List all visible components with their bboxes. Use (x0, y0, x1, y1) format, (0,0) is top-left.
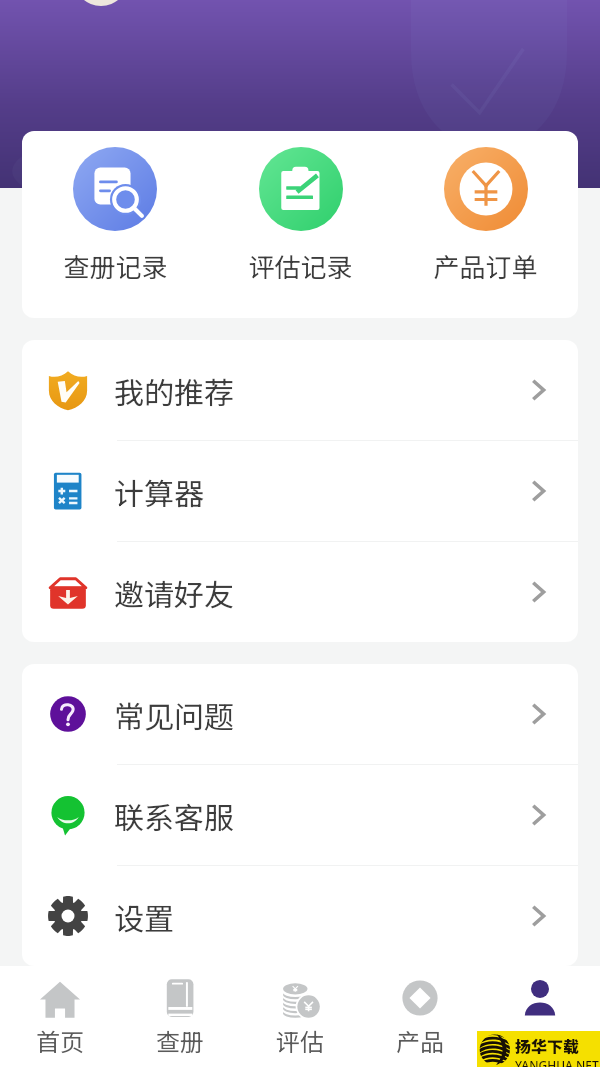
button[interactable]: 我的 (480, 966, 600, 1067)
staticText: 首页 (36, 1023, 84, 1058)
button[interactable]: 邀请好友 (22, 542, 578, 642)
staticText: 邀请好友 (114, 571, 234, 614)
button[interactable]: 评估 (240, 966, 360, 1067)
staticText: 评估 (276, 1023, 324, 1058)
button[interactable]: 产品 (360, 966, 480, 1067)
staticText: 我的推荐 (114, 369, 234, 412)
button[interactable]: 计算器 (22, 441, 578, 541)
button[interactable]: 查册记录 (22, 147, 208, 318)
other: 邀请好友 (524, 578, 552, 606)
button[interactable]: 设置 (22, 866, 578, 966)
staticText: 查册记录 (63, 247, 168, 285)
button[interactable]: 查册 (120, 966, 240, 1067)
staticText: 设置 (114, 895, 174, 938)
staticText: 常见问题 (114, 693, 234, 736)
other: 常见问题 (524, 700, 552, 728)
staticText: 产品 (396, 1023, 444, 1058)
other: 联系客服 (524, 801, 552, 829)
staticText: 评估记录 (248, 247, 353, 285)
button[interactable]: 评估记录 (208, 147, 393, 318)
other: 设置 (524, 902, 552, 930)
button[interactable]: 联系客服 (22, 765, 578, 865)
button[interactable]: 首页 (0, 966, 120, 1067)
staticText: 计算器 (114, 470, 204, 513)
other: 我的推荐 (524, 376, 552, 404)
staticText: 查册 (156, 1023, 204, 1058)
button[interactable]: 产品订单 (393, 147, 578, 318)
staticText: YANGHUA.NET (515, 1057, 599, 1067)
staticText: 产品订单 (433, 247, 538, 285)
other: 计算器 (524, 477, 552, 505)
button[interactable]: 常见问题 (22, 664, 578, 764)
staticText: 我的 (516, 1023, 564, 1058)
staticText: 联系客服 (114, 794, 234, 837)
staticText: 扬华下载 (515, 1034, 580, 1057)
button[interactable]: 我的推荐 (22, 340, 578, 440)
